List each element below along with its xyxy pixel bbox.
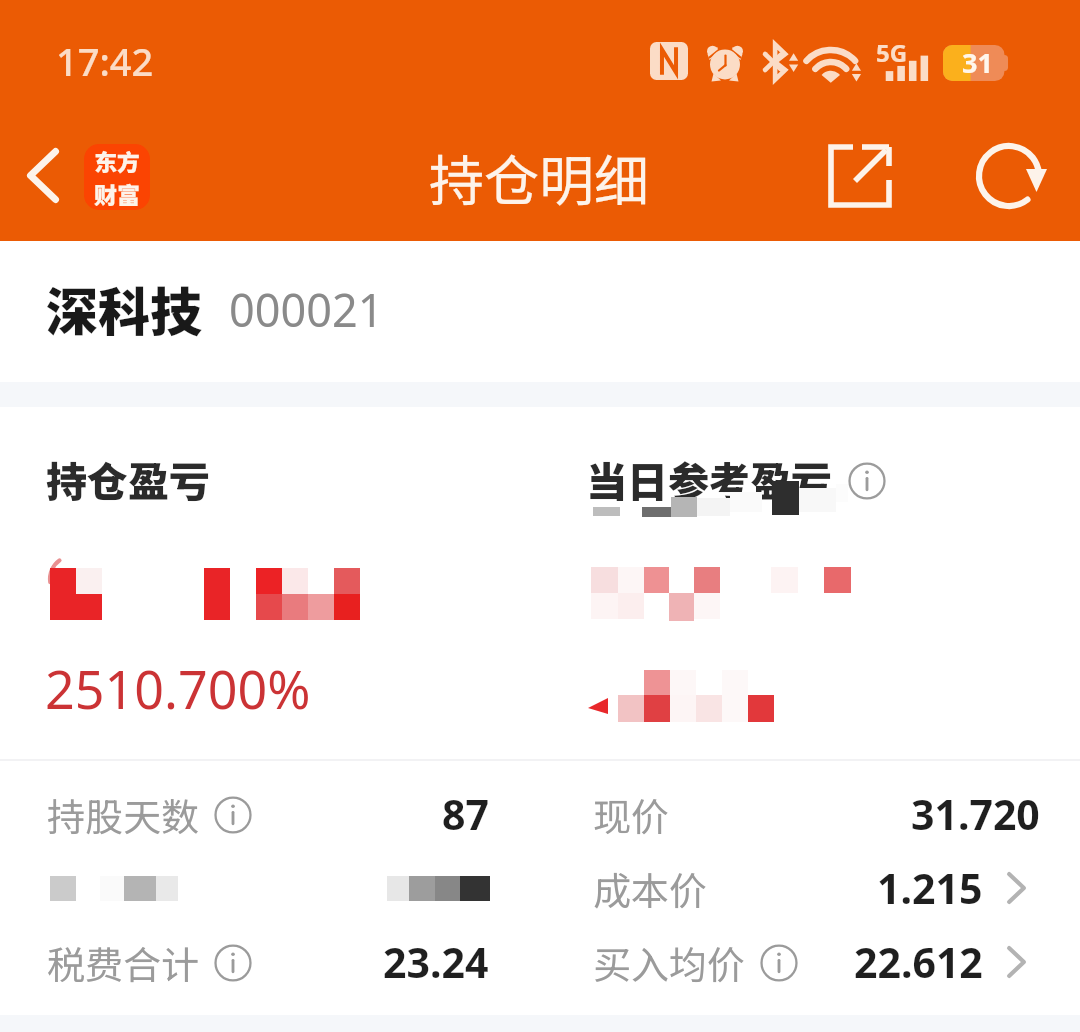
- staticText: 2510.700%: [45, 653, 311, 724]
- staticText: 当日参考盈亏: [586, 449, 832, 508]
- staticText: 持股天数: [47, 787, 200, 842]
- staticText: 31: [962, 44, 993, 80]
- staticText: 财富: [94, 177, 140, 210]
- staticText: 东方: [94, 144, 140, 177]
- staticText: 税费合计: [47, 935, 200, 990]
- staticText: 87: [442, 786, 489, 842]
- button[interactable]: Back: [0, 112, 86, 241]
- staticText: 000021: [229, 279, 384, 340]
- staticText: 22.612: [854, 934, 983, 990]
- button[interactable]: [0, 851, 540, 925]
- button[interactable]: 税费合计: [0, 925, 540, 999]
- staticText: 深科技: [46, 271, 203, 346]
- button[interactable]: 成本价: [540, 851, 1080, 925]
- button[interactable]: Share: [812, 128, 908, 224]
- staticText: 持仓明细: [429, 137, 650, 217]
- staticText: 现价: [593, 787, 670, 842]
- button[interactable]: 买入均价: [540, 925, 1080, 999]
- button[interactable]: Refresh: [961, 128, 1061, 228]
- staticText: 17:42: [56, 35, 154, 87]
- staticText: 成本价: [593, 861, 708, 916]
- staticText: 持仓盈亏: [46, 449, 210, 508]
- staticText: 23.24: [383, 934, 489, 990]
- staticText: 31.720: [911, 786, 1040, 842]
- staticText: 买入均价: [593, 935, 746, 990]
- staticText: 5G: [876, 36, 908, 69]
- staticText: 1.215: [877, 860, 983, 916]
- button[interactable]: 现价: [540, 777, 1080, 851]
- button[interactable]: East Money: [84, 144, 150, 210]
- button[interactable]: 持股天数: [0, 777, 540, 851]
